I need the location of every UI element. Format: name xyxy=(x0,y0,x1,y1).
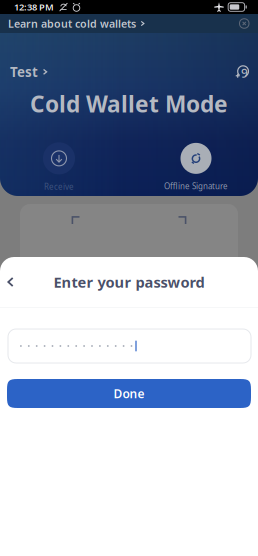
button[interactable]: Dismiss xyxy=(239,19,249,28)
staticText: 9 xyxy=(241,65,248,81)
staticText: Receive xyxy=(44,181,74,192)
staticText: 12:38 PM xyxy=(14,1,54,13)
staticText: Test xyxy=(10,63,38,81)
staticText: Enter your password xyxy=(53,272,204,292)
staticText: Done xyxy=(113,385,144,401)
button[interactable]: Receive xyxy=(0,142,118,192)
staticText: Learn about cold wallets xyxy=(8,16,136,31)
button[interactable]: Offline Signature xyxy=(118,143,258,191)
button[interactable]: Back xyxy=(0,267,25,296)
staticText: Offline Signature xyxy=(164,181,228,191)
button[interactable]: Add wallet xyxy=(235,62,250,81)
button[interactable]: Done xyxy=(7,379,251,408)
staticText: Cold Wallet Mode xyxy=(30,89,228,119)
button[interactable]: Learn about cold wallets xyxy=(8,16,146,31)
button[interactable]: Test xyxy=(10,60,49,84)
